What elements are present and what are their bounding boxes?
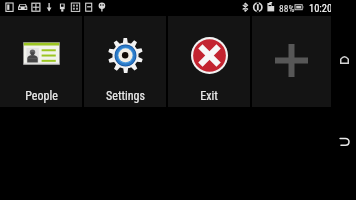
button[interactable]: Settings	[84, 16, 166, 107]
staticText: People	[25, 89, 58, 103]
staticText: 10:20	[309, 2, 333, 14]
button[interactable]: Add	[252, 16, 331, 107]
button[interactable]: People	[0, 16, 82, 107]
staticText: Settings	[106, 89, 145, 103]
staticText: 88%	[279, 3, 295, 14]
button[interactable]: Exit	[168, 16, 250, 107]
button[interactable]: Back	[332, 129, 356, 153]
staticText: Exit	[200, 89, 218, 103]
button[interactable]: Home	[332, 47, 356, 71]
